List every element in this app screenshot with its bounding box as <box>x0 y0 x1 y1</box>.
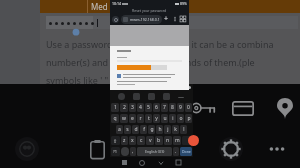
button[interactable] <box>46 16 298 29</box>
button[interactable]: More options <box>262 134 292 164</box>
button[interactable]: 5 <box>145 103 152 112</box>
staticText: q <box>113 115 117 122</box>
staticText: Med <box>91 1 108 12</box>
staticText: m <box>175 137 180 144</box>
button[interactable]: English (US) <box>137 147 172 156</box>
staticText: Reset your password <box>132 8 167 13</box>
staticText: — <box>178 93 185 101</box>
button[interactable]: v <box>146 136 154 145</box>
button[interactable]: ?1 <box>111 147 120 156</box>
button[interactable]: g <box>148 125 155 134</box>
button[interactable]: w <box>120 114 128 123</box>
button[interactable]: Keyboard tool 4 <box>163 93 170 100</box>
button[interactable]: 8 <box>169 103 176 112</box>
staticText: , <box>132 148 134 155</box>
button[interactable]: 10:14 <box>110 0 189 90</box>
button[interactable]: x <box>129 136 136 145</box>
staticText: number(s) and s least two kinds of them.… <box>46 56 255 68</box>
staticText: i <box>172 115 174 122</box>
button[interactable]: Done <box>180 147 192 156</box>
staticText: 7 <box>163 104 166 111</box>
button[interactable]: d <box>132 125 139 134</box>
button[interactable]: m <box>173 136 181 145</box>
button[interactable]: k <box>172 125 179 134</box>
button[interactable]: r <box>137 114 144 123</box>
staticText: 6 <box>155 104 158 111</box>
button[interactable]: . <box>173 147 179 156</box>
button[interactable]: Settings <box>216 134 246 164</box>
button[interactable]: 6 <box>153 103 160 112</box>
button[interactable]: h <box>156 125 163 134</box>
button[interactable]: l <box>180 125 187 134</box>
staticText: z <box>123 137 126 144</box>
staticText: 10:14 <box>112 1 121 6</box>
button[interactable]: Payment methods <box>225 92 261 124</box>
button[interactable]: y <box>153 114 160 123</box>
button[interactable]: e <box>129 114 136 123</box>
button[interactable]: c <box>137 136 145 145</box>
button[interactable]: p <box>185 114 192 123</box>
staticText: j <box>167 126 169 133</box>
button[interactable]: Back <box>112 16 119 23</box>
button[interactable]: f <box>140 125 147 134</box>
button[interactable]: Home <box>139 160 145 166</box>
button[interactable]: , <box>130 147 136 156</box>
staticText: . <box>175 148 177 155</box>
button[interactable]: b <box>155 136 163 145</box>
button[interactable]: z <box>121 136 128 145</box>
button[interactable]: Keyboard tool 1 <box>118 93 125 100</box>
button[interactable]: 1 <box>111 103 119 112</box>
button[interactable]: Voice input <box>121 147 129 156</box>
button[interactable]: 0 <box>185 103 192 112</box>
button[interactable]: n <box>164 136 172 145</box>
button[interactable]: i <box>169 114 176 123</box>
staticText: Use a password 8~16 characters, it can b… <box>46 38 274 50</box>
button[interactable]: Passwords <box>185 92 221 124</box>
button[interactable]: 2 <box>120 103 128 112</box>
button[interactable]: s <box>124 125 131 134</box>
staticText: o <box>179 115 183 122</box>
button[interactable]: 9 <box>177 103 184 112</box>
button[interactable]: 7 <box>161 103 168 112</box>
button[interactable]: Backspace <box>182 136 192 145</box>
staticText: 4 <box>139 104 142 111</box>
button[interactable]: Addresses <box>267 92 300 124</box>
button[interactable]: t <box>145 114 152 123</box>
button[interactable]: 4 <box>137 103 144 112</box>
button[interactable]: More <box>172 16 178 22</box>
button[interactable]: Back <box>158 160 164 166</box>
button[interactable]: 3 <box>129 103 136 112</box>
staticText: + <box>164 14 169 24</box>
staticText: 1 <box>114 104 117 111</box>
staticText: n <box>166 137 170 144</box>
staticText: 8 <box>171 104 174 111</box>
staticText: f <box>143 126 145 133</box>
staticText: d <box>134 126 138 133</box>
button[interactable]: Keyboard tool 2 <box>133 93 140 100</box>
button[interactable]: Emoji <box>12 134 42 164</box>
staticText: 3 <box>131 104 134 111</box>
button[interactable]: a <box>116 125 123 134</box>
button[interactable]: q <box>111 114 119 123</box>
staticText: r <box>139 115 142 122</box>
staticText: 5 <box>147 104 150 111</box>
staticText: u <box>163 115 167 122</box>
staticText: ?1 <box>113 149 118 154</box>
staticText: mwes-192.168.0.100 <box>130 17 160 22</box>
button[interactable]: j <box>164 125 171 134</box>
button[interactable]: u <box>161 114 168 123</box>
staticText: b <box>157 137 161 144</box>
staticText: 0 <box>187 104 190 111</box>
staticText: 89% <box>179 1 187 6</box>
button[interactable]: Clipboard <box>82 134 112 164</box>
button[interactable]: Keyboard tool 3 <box>148 93 155 100</box>
staticText: e <box>131 115 134 122</box>
staticText: t <box>148 115 150 122</box>
button[interactable]: Shift <box>111 136 120 145</box>
button[interactable]: o <box>177 114 184 123</box>
staticText: Done <box>182 149 191 154</box>
staticText: h <box>158 126 162 133</box>
